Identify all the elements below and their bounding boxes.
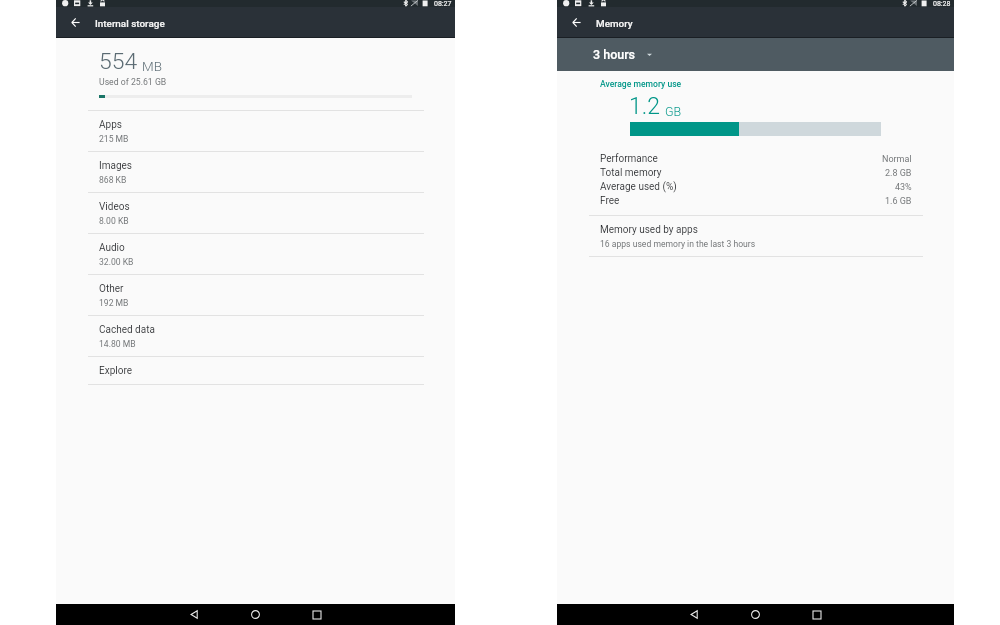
staticText: Normal [882,154,912,165]
staticText: Videos [99,201,130,213]
button[interactable]: Back [674,604,715,625]
staticText: 43% [895,182,912,193]
button[interactable]: Recent apps [796,604,837,625]
staticText: 08:27 [434,0,452,7]
staticText: 3 hours [593,47,636,62]
staticText: 2.8 GB [885,168,912,179]
staticText: Used of 25.61 GB [99,77,167,87]
staticText: 08:28 [933,0,951,7]
staticText: Average memory use [600,79,682,89]
button[interactable]: Home [735,604,776,625]
staticText: Free [600,195,620,207]
staticText: Total memory [600,167,662,179]
staticText: Audio [99,242,125,254]
staticText: Memory used by apps [600,224,698,236]
staticText: Cached data [99,324,155,336]
staticText: 868 KB [99,175,127,185]
button[interactable]: 3 hours [557,38,954,71]
button[interactable]: Memory used by apps [557,216,954,256]
button[interactable]: Back [174,604,215,625]
staticText: MB [142,58,162,74]
button[interactable]: Audio [56,234,455,274]
staticText: 554 [99,48,138,75]
staticText: 16 apps used memory in the last 3 hours [600,239,756,249]
staticText: GB [665,104,682,119]
staticText: 1.6 GB [885,196,912,207]
staticText: Apps [99,119,122,131]
staticText: Memory [596,18,633,30]
staticText: 14.80 MB [99,339,136,349]
staticText: 8.00 KB [99,216,129,226]
staticText: Average used (%) [600,181,677,193]
button[interactable]: Navigate up [56,7,95,37]
button[interactable]: Videos [56,193,455,233]
staticText: 192 MB [99,298,129,308]
staticText: Other [99,283,124,295]
button[interactable]: Recent apps [296,604,337,625]
button[interactable]: Apps [56,111,455,151]
button[interactable]: Navigate up [557,7,596,37]
staticText: 1.2 [629,93,661,120]
button[interactable]: Explore [56,357,455,384]
button[interactable]: Other [56,275,455,315]
staticText: Images [99,160,133,172]
staticText: 215 MB [99,134,129,144]
button[interactable]: Home [235,604,276,625]
staticText: 32.00 KB [99,257,134,267]
button[interactable]: Images [56,152,455,192]
staticText: Explore [99,365,132,377]
staticText: Internal storage [95,18,165,30]
button[interactable]: Cached data [56,316,455,356]
staticText: Performance [600,153,658,165]
